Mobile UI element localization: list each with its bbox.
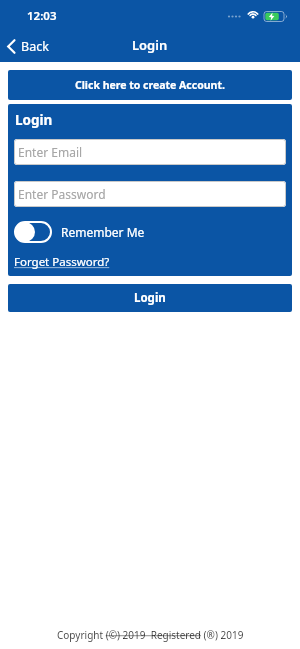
staticText: Click here to create Account.: [75, 78, 225, 92]
button[interactable]: Enter Email: [14, 139, 286, 165]
staticText: Back: [21, 38, 49, 55]
button[interactable]: Click here to create Account.: [8, 70, 292, 100]
button[interactable]: Forget Password?: [14, 254, 110, 270]
staticText: Remember Me: [61, 224, 145, 240]
staticText: Copyright (©) 2019 Registered (®) 2019: [57, 628, 244, 642]
staticText: Enter Password: [18, 186, 106, 202]
staticText: 12:03: [27, 8, 57, 24]
staticText: Login: [15, 111, 53, 129]
staticText: Login: [134, 290, 166, 306]
button[interactable]: Enter Password: [14, 181, 286, 207]
staticText: Login: [132, 36, 168, 54]
button[interactable]: Back: [6, 38, 49, 55]
button[interactable]: Login: [8, 284, 292, 312]
staticText: Enter Email: [18, 144, 83, 160]
button[interactable]: [14, 221, 52, 243]
